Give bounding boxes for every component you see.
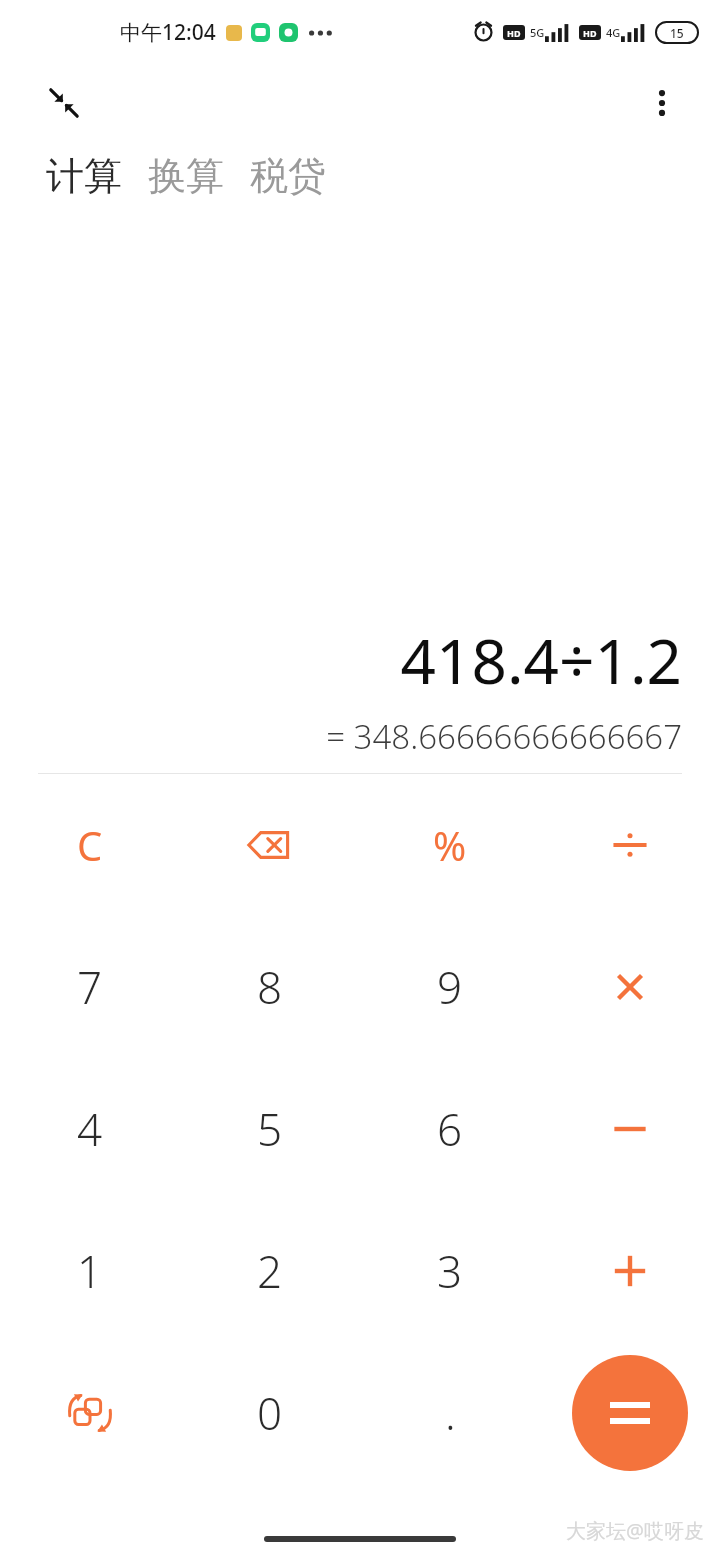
staticText: 9: [437, 957, 463, 1017]
button[interactable]: Divide: [584, 799, 676, 891]
staticText: 4: [77, 1099, 103, 1159]
staticText: HD: [507, 27, 521, 39]
button[interactable]: Backspace: [224, 799, 316, 891]
staticText: 4G: [606, 25, 621, 40]
staticText: 8: [257, 957, 283, 1017]
staticText: 6: [437, 1099, 463, 1159]
staticText: 3: [437, 1241, 463, 1301]
button[interactable]: 8: [224, 941, 316, 1033]
button[interactable]: Minus: [584, 1083, 676, 1175]
staticText: 2: [257, 1241, 283, 1301]
staticText: 15: [670, 25, 684, 41]
button[interactable]: Collapse: [36, 75, 92, 131]
staticText: C: [77, 818, 103, 872]
button[interactable]: .: [404, 1367, 496, 1459]
staticText: %: [433, 818, 467, 872]
staticText: 计算: [46, 152, 122, 200]
button[interactable]: 0: [224, 1367, 316, 1459]
button[interactable]: Unit conversion: [44, 1367, 136, 1459]
staticText: 7: [77, 957, 103, 1017]
staticText: 5: [257, 1099, 283, 1159]
staticText: 换算: [148, 152, 224, 200]
button[interactable]: %: [404, 799, 496, 891]
staticText: 5G: [530, 25, 545, 40]
staticText: 大家坛@哎呀皮: [566, 1517, 704, 1544]
staticText: .: [445, 1383, 456, 1443]
staticText: 418.4÷1.2: [400, 618, 682, 702]
staticText: 1: [77, 1241, 103, 1301]
button[interactable]: 税贷: [248, 146, 328, 206]
button[interactable]: 6: [404, 1083, 496, 1175]
button[interactable]: 3: [404, 1225, 496, 1317]
button[interactable]: 2: [224, 1225, 316, 1317]
button[interactable]: More options: [634, 75, 690, 131]
button[interactable]: Plus: [584, 1225, 676, 1317]
button[interactable]: 计算: [44, 146, 124, 206]
staticText: 0: [257, 1383, 283, 1443]
button[interactable]: Multiply: [584, 941, 676, 1033]
button[interactable]: 1: [44, 1225, 136, 1317]
staticText: = 348.66666666666667: [326, 714, 682, 759]
staticText: 税贷: [250, 152, 326, 200]
button[interactable]: 5: [224, 1083, 316, 1175]
button[interactable]: 换算: [146, 146, 226, 206]
button[interactable]: 7: [44, 941, 136, 1033]
button[interactable]: Equals: [572, 1355, 688, 1471]
button[interactable]: 4: [44, 1083, 136, 1175]
button[interactable]: C: [44, 799, 136, 891]
staticText: 中午12:04: [120, 18, 216, 47]
button[interactable]: 9: [404, 941, 496, 1033]
staticText: HD: [583, 27, 597, 39]
